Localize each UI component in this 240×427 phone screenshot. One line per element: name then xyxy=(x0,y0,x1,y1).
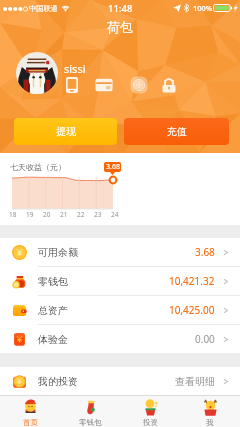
staticText: 投资 xyxy=(143,418,158,427)
staticText: 中国联通 xyxy=(29,4,58,13)
staticText: 10,425.00 xyxy=(169,303,215,317)
staticText: 零钱包 xyxy=(38,275,68,288)
button[interactable]: Fingerprint xyxy=(129,75,149,95)
button[interactable]: 充值 xyxy=(124,118,229,145)
staticText: sissi xyxy=(64,61,86,76)
staticText: 21 xyxy=(60,210,68,219)
button[interactable]: Phone xyxy=(62,75,82,95)
staticText: 充值 xyxy=(167,125,187,138)
staticText: 100% xyxy=(193,3,213,13)
staticText: 查看明细 xyxy=(175,375,215,388)
button[interactable]: 零钱包 xyxy=(60,396,120,427)
staticText: 可用余额 xyxy=(38,246,78,259)
staticText: 我的投资 xyxy=(38,375,78,388)
staticText: 体验金 xyxy=(38,333,68,346)
button[interactable]: 总资产 xyxy=(0,296,240,324)
button[interactable]: 零钱包 xyxy=(0,267,240,295)
button[interactable]: 首页 xyxy=(0,396,60,427)
staticText: 总资产 xyxy=(38,304,68,317)
staticText: 零钱包 xyxy=(79,418,102,427)
button[interactable]: 我 xyxy=(180,396,240,427)
button[interactable]: 可用余额 xyxy=(0,238,240,266)
button[interactable]: 体验金 xyxy=(0,325,240,353)
button[interactable]: Bank card xyxy=(94,75,114,95)
staticText: 19 xyxy=(26,210,34,219)
button[interactable]: Profile avatar xyxy=(16,52,58,94)
staticText: 0.00 xyxy=(195,332,215,346)
button[interactable]: 我的投资 xyxy=(0,367,240,395)
staticText: 3.68 xyxy=(195,245,215,259)
staticText: 荷包 xyxy=(107,19,133,35)
staticText: 20 xyxy=(43,210,51,219)
staticText: 24 xyxy=(111,210,119,219)
staticText: 10,421.32 xyxy=(169,274,215,288)
staticText: 3.68 xyxy=(106,162,120,172)
staticText: 18 xyxy=(9,210,17,219)
button[interactable]: 投资 xyxy=(120,396,180,427)
button[interactable]: Security lock xyxy=(159,75,179,95)
staticText: 提现 xyxy=(56,125,76,138)
staticText: 11:48 xyxy=(108,2,133,15)
button[interactable]: 提现 xyxy=(14,118,117,145)
staticText: 七天收益（元） xyxy=(10,162,66,172)
staticText: 22 xyxy=(77,210,85,219)
staticText: 首页 xyxy=(23,418,38,427)
staticText: 23 xyxy=(94,210,102,219)
staticText: 我 xyxy=(206,418,214,427)
